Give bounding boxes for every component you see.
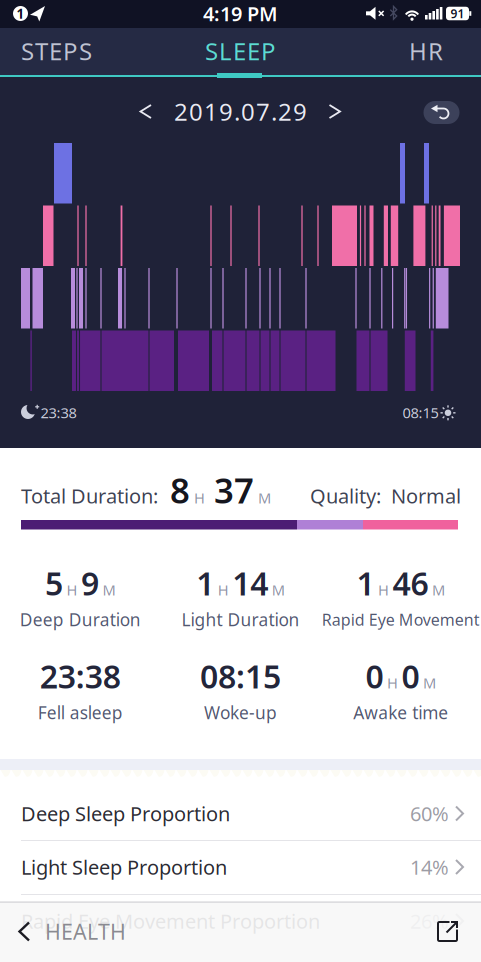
staticText: M (102, 580, 115, 599)
button[interactable]: Back to today (423, 101, 459, 124)
staticText: M (423, 673, 436, 692)
staticText: 23:38 (40, 403, 76, 422)
staticText: 08:15 (200, 655, 281, 697)
staticText: Woke-up (204, 701, 277, 724)
staticText: H (387, 673, 398, 692)
staticText: Light Sleep Proportion (21, 854, 227, 880)
staticText: SLEEP (205, 35, 276, 67)
staticText: 14 (232, 562, 268, 604)
staticText: Light Duration (181, 608, 299, 631)
staticText: Fell asleep (38, 701, 123, 724)
staticText: Deep Sleep Proportion (21, 800, 230, 827)
button[interactable]: Next day (325, 101, 345, 121)
staticText: Quality: Normal (310, 482, 461, 509)
button[interactable]: Deep Sleep Proportion (0, 787, 481, 840)
staticText: 9 (81, 562, 99, 604)
button[interactable]: Share (436, 920, 459, 943)
staticText: 8 (170, 467, 190, 513)
button[interactable]: STEPS (0, 27, 126, 75)
staticText: 37 (214, 467, 254, 513)
button[interactable]: Previous day (135, 101, 155, 121)
staticText: 60% (410, 800, 449, 827)
staticText: 14% (410, 854, 449, 880)
staticText: M (272, 580, 285, 599)
staticText: 1 (16, 5, 24, 22)
staticText: 4:19 PM (203, 0, 278, 27)
button[interactable]: Rapid Eye Movement Proportion (0, 894, 481, 947)
staticText: 1 (196, 562, 214, 604)
staticText: Rapid Eye Movement (322, 609, 480, 630)
staticText: 1 (357, 562, 375, 604)
staticText: H (378, 580, 389, 599)
staticText: 5 (45, 562, 63, 604)
button[interactable]: Back to Health (17, 909, 147, 953)
staticText: M (258, 488, 271, 507)
button[interactable]: HR (356, 27, 481, 75)
staticText: STEPS (21, 35, 92, 67)
staticText: 23:38 (40, 655, 121, 697)
staticText: H (194, 488, 205, 507)
staticText: Deep Duration (20, 608, 141, 631)
staticText: H (218, 580, 229, 599)
staticText: H (66, 580, 77, 599)
staticText: 26% (410, 908, 449, 934)
staticText: HR (409, 35, 443, 67)
staticText: 0 (366, 655, 384, 697)
staticText: Total Duration: (21, 482, 158, 509)
staticText: HEALTH (45, 917, 126, 946)
staticText: 2019.07.29 (174, 96, 307, 127)
button[interactable]: SLEEP (170, 27, 310, 75)
staticText: M (432, 580, 445, 599)
staticText: 46 (393, 562, 429, 604)
staticText: Awake time (353, 701, 448, 724)
button[interactable]: Light Sleep Proportion (0, 840, 481, 893)
staticText: 0 (402, 655, 420, 697)
staticText: Rapid Eye Movement Proportion (21, 908, 320, 934)
staticText: 08:15 (402, 403, 438, 422)
staticText: 91 (450, 5, 464, 21)
